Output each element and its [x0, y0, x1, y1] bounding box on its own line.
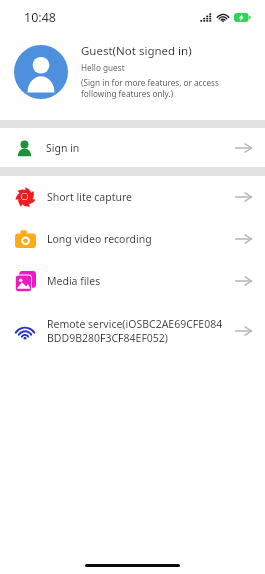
staticText: 10:48 — [24, 9, 56, 26]
button[interactable]: Short lite capture — [0, 176, 265, 218]
staticText: (Sign in for more features, or access fo… — [81, 77, 255, 99]
staticText: Sign in — [46, 141, 80, 155]
staticText: Short lite capture — [47, 190, 133, 204]
button[interactable]: Guest(Not signed in) — [0, 34, 265, 120]
button[interactable]: Remote service — [0, 302, 265, 360]
button[interactable]: Sign in — [0, 128, 265, 167]
button[interactable]: Media files — [0, 260, 265, 302]
staticText: Guest(Not signed in) — [81, 43, 192, 59]
staticText: Hello guest — [81, 62, 125, 73]
staticText: Remote service(iOSBC2AE69CFE084BDD9B280F… — [47, 317, 226, 345]
staticText: Long video recording — [47, 232, 152, 246]
staticText: Media files — [47, 274, 101, 288]
button[interactable]: Long video recording — [0, 218, 265, 260]
